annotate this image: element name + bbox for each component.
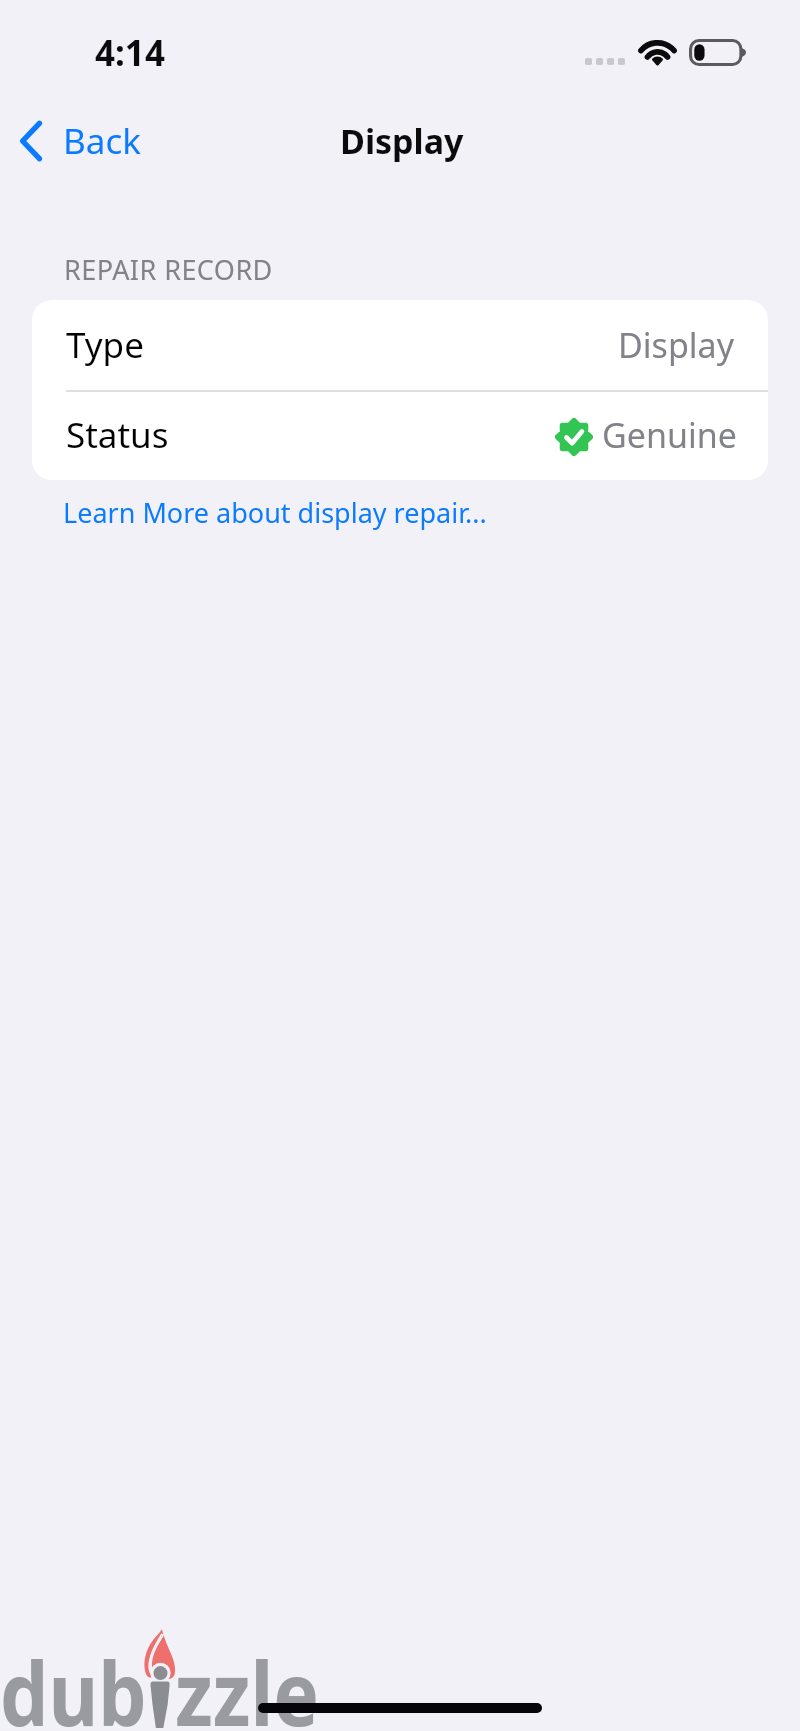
button[interactable]: Type <box>32 300 768 390</box>
staticText: zzle <box>175 1633 319 1731</box>
staticText: REPAIR RECORD <box>64 251 273 288</box>
staticText: Back <box>63 117 141 165</box>
button[interactable]: Learn More about display repair... <box>49 486 501 539</box>
button[interactable]: Back <box>11 111 149 171</box>
other: Battery low <box>689 39 748 66</box>
staticText: Type <box>66 321 144 369</box>
other: Verified genuine part <box>553 416 595 458</box>
staticText: dub <box>0 1633 147 1731</box>
staticText: Learn More about display repair... <box>63 494 487 531</box>
staticText: Status <box>66 411 169 459</box>
staticText: Genuine <box>602 412 737 458</box>
staticText: Display <box>618 322 734 368</box>
other: Wi-Fi <box>640 39 675 66</box>
staticText: Display <box>340 118 464 164</box>
button[interactable]: Status <box>32 390 768 480</box>
other: Cellular signal <box>585 58 625 65</box>
staticText: 4:14 <box>95 29 165 77</box>
